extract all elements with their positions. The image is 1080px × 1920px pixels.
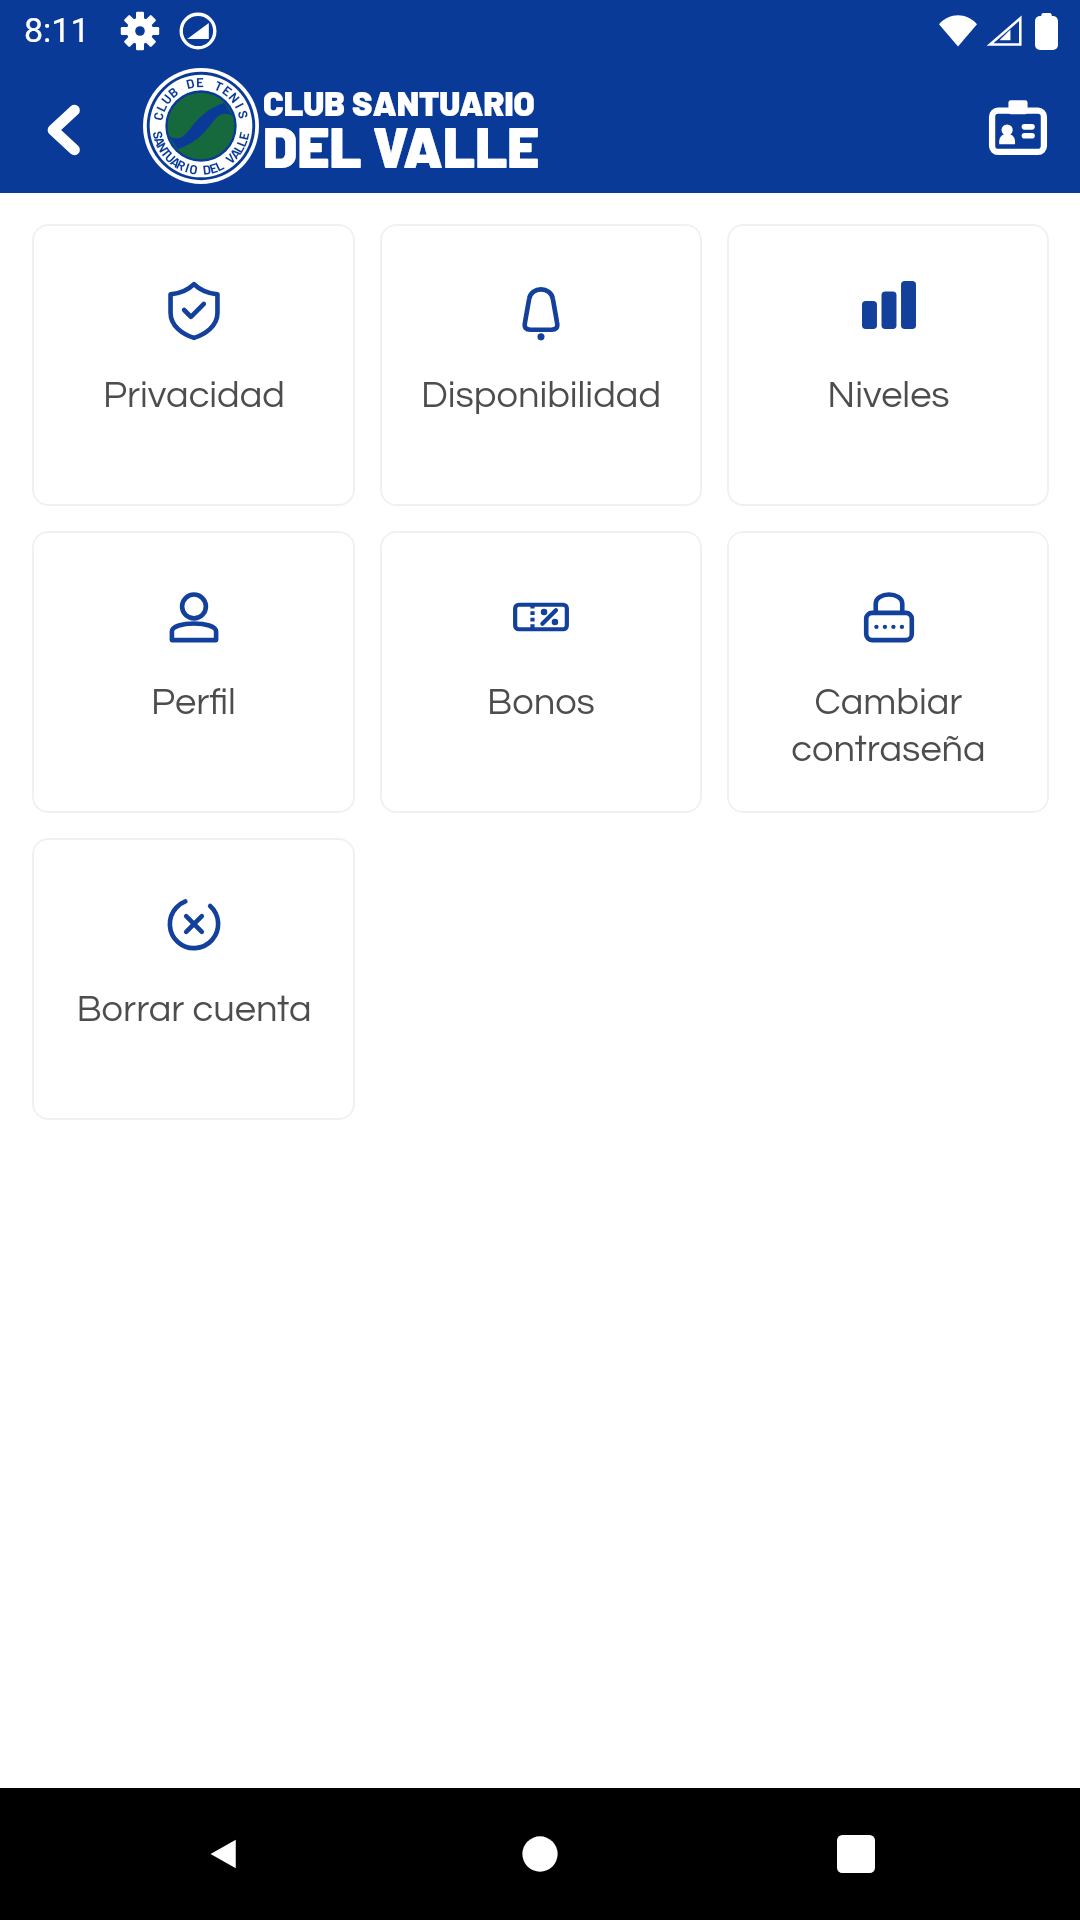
staticText: Borrar cuenta xyxy=(76,990,312,1029)
staticText: CLUB SANTUARIO xyxy=(263,82,535,123)
staticText: 8:11 xyxy=(24,10,90,50)
button[interactable]: Borrar cuenta xyxy=(32,838,355,1120)
button[interactable]: Disponibilidad xyxy=(380,224,702,506)
staticText: Privacidad xyxy=(103,376,285,415)
button[interactable]: Perfil xyxy=(32,531,355,813)
staticText: Disponibilidad xyxy=(421,376,661,415)
button[interactable]: Carnet de socio xyxy=(976,88,1060,172)
button[interactable]: Privacidad xyxy=(32,224,355,506)
button[interactable]: Bonos xyxy=(380,531,702,813)
button[interactable]: Inicio xyxy=(502,1816,578,1892)
button[interactable]: Atrás xyxy=(22,88,106,172)
button[interactable]: Atrás xyxy=(186,1816,262,1892)
staticText: Bonos xyxy=(487,683,595,722)
staticText: Cambiar contraseña xyxy=(791,683,986,769)
staticText: DEL VALLE xyxy=(263,112,540,179)
button[interactable]: Niveles xyxy=(727,224,1049,506)
staticText: Niveles xyxy=(827,376,950,415)
button[interactable]: Cambiar contraseña xyxy=(727,531,1049,813)
button[interactable]: Recientes xyxy=(818,1816,894,1892)
staticText: Perfil xyxy=(151,683,236,722)
